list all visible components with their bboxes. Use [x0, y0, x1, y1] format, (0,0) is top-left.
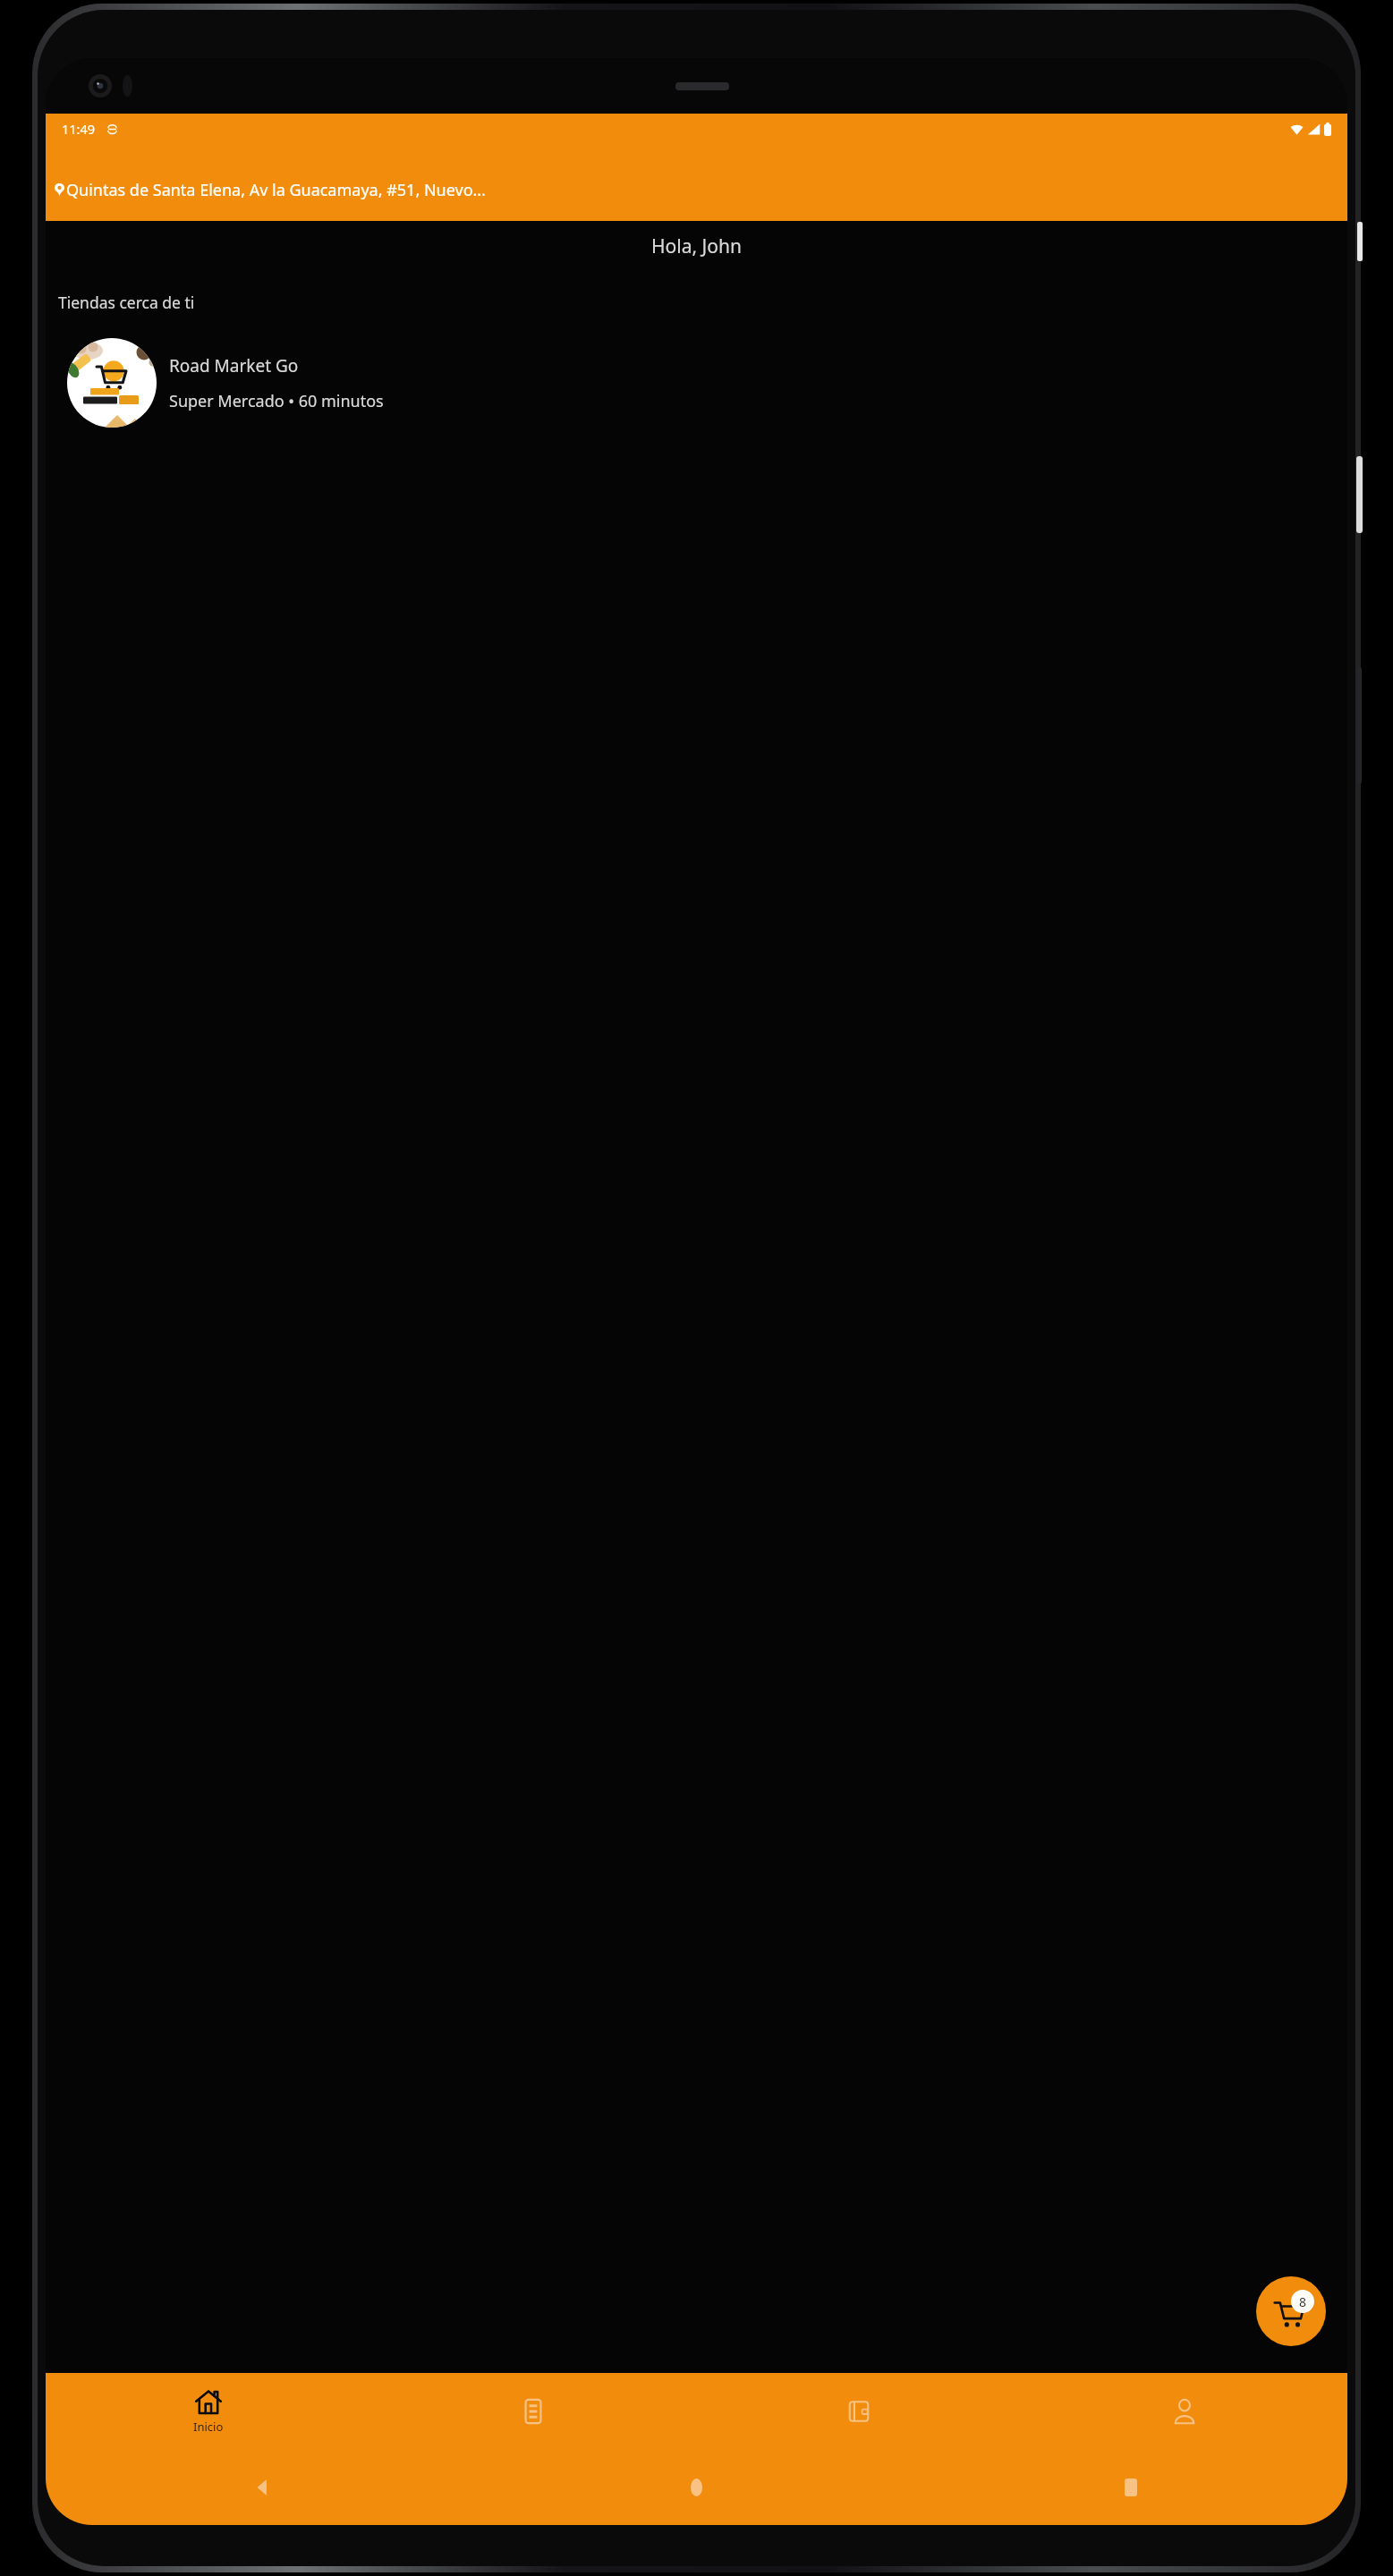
button[interactable]: Inicio — [46, 2373, 370, 2450]
button[interactable]: Recientes — [913, 2450, 1347, 2525]
button[interactable]: Carrito de compras, 8 artículos — [1256, 2276, 1326, 2346]
button[interactable]: Pedidos — [370, 2373, 696, 2450]
staticText: 8 — [1299, 2293, 1307, 2310]
staticText: Hola, John — [46, 233, 1347, 259]
button[interactable]: Atrás — [46, 2450, 480, 2525]
button[interactable]: Cartera — [696, 2373, 1022, 2450]
staticText: Road Market Go — [169, 354, 299, 377]
button[interactable]: Road Market Go — [46, 333, 1347, 433]
staticText: 11:49 — [62, 120, 96, 138]
staticText: Quintas de Santa Elena, Av la Guacamaya,… — [66, 179, 486, 201]
button[interactable]: Quintas de Santa Elena, Av la Guacamaya,… — [46, 158, 1347, 221]
button[interactable]: Perfil — [1022, 2373, 1347, 2450]
staticText: Super Mercado • 60 minutos — [169, 390, 384, 412]
staticText: Tiendas cerca de ti — [58, 292, 195, 313]
button[interactable]: Inicio — [480, 2450, 913, 2525]
staticText: Inicio — [193, 2419, 224, 2435]
